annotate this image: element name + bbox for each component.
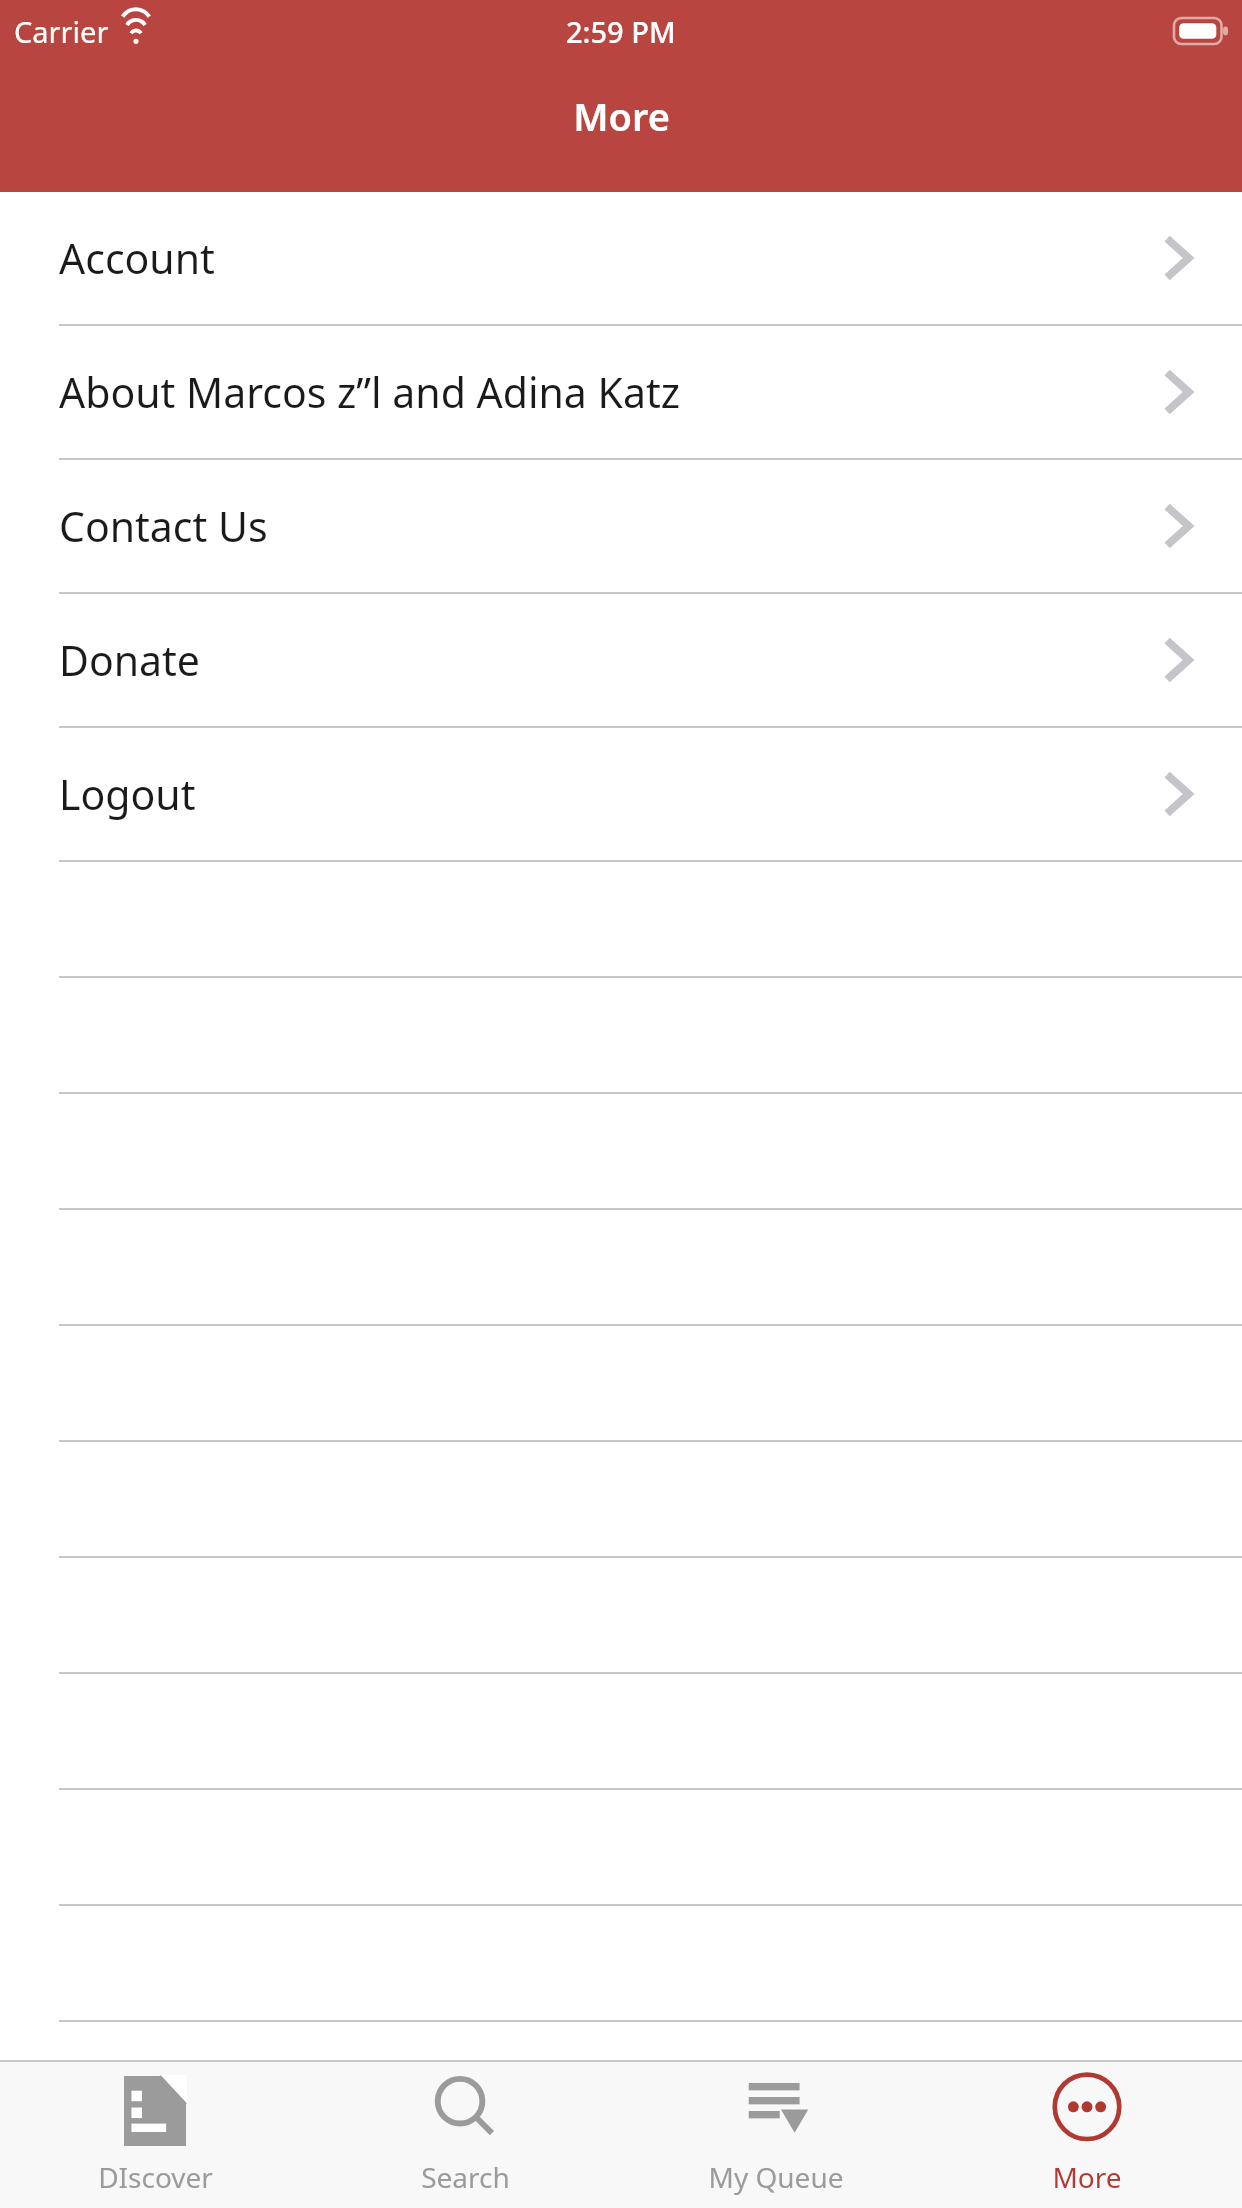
staticText: More <box>573 90 670 142</box>
button[interactable]: More <box>931 2062 1242 2208</box>
staticText: Logout <box>59 766 196 822</box>
staticText: About Marcos z”l and Adina Katz <box>59 364 680 420</box>
staticText: Carrier <box>14 12 109 51</box>
button[interactable]: Discover <box>0 2062 310 2208</box>
other: More <box>1056 2076 1118 2146</box>
button[interactable]: Contact Us <box>0 460 1242 592</box>
button[interactable]: My Queue <box>620 2062 931 2208</box>
button[interactable]: Donate <box>0 594 1242 726</box>
staticText: Donate <box>59 632 200 688</box>
staticText: Account <box>59 230 215 286</box>
button[interactable]: Search <box>310 2062 620 2208</box>
button[interactable]: About Marcos z”l and Adina Katz <box>0 326 1242 458</box>
staticText: Search <box>421 2158 510 2196</box>
other: My Queue <box>745 2076 807 2146</box>
other: Discover <box>124 2076 186 2146</box>
staticText: My Queue <box>708 2158 844 2196</box>
staticText: More <box>1052 2158 1122 2196</box>
button[interactable]: Logout <box>0 728 1242 860</box>
staticText: 2:59 PM <box>566 12 676 51</box>
other: Search <box>434 2076 496 2146</box>
button[interactable]: Account <box>0 192 1242 324</box>
staticText: DIscover <box>98 2158 213 2196</box>
staticText: Contact Us <box>59 498 268 554</box>
